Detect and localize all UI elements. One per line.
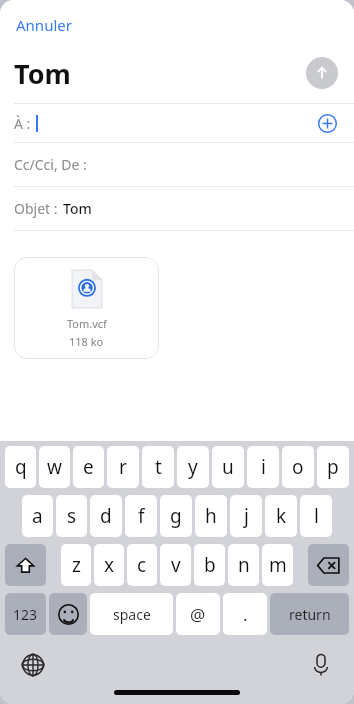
staticText: Tom xyxy=(63,199,92,218)
button[interactable]: Envoyer xyxy=(306,57,338,89)
staticText: Annuler xyxy=(16,15,72,35)
button[interactable]: l xyxy=(300,495,332,537)
button[interactable]: x xyxy=(94,544,124,586)
staticText: z xyxy=(72,552,81,578)
button[interactable]: d xyxy=(90,495,122,537)
staticText: Objet : xyxy=(14,199,58,218)
button[interactable]: i xyxy=(247,446,279,488)
button[interactable]: a xyxy=(22,495,53,537)
button[interactable]: Emoji xyxy=(49,593,87,635)
button[interactable]: z xyxy=(61,544,91,586)
staticText: Cc/Cci, De : xyxy=(14,155,87,174)
button[interactable]: k xyxy=(265,495,297,537)
button[interactable]: Cc/Cci, De : xyxy=(0,143,354,186)
button[interactable]: return xyxy=(270,593,349,635)
button[interactable]: Ajouter un contact xyxy=(314,110,340,136)
staticText: d xyxy=(100,503,112,529)
staticText: e xyxy=(83,454,94,480)
staticText: t xyxy=(155,454,162,480)
staticText: r xyxy=(119,454,127,480)
staticText: i xyxy=(261,454,266,480)
button[interactable]: p xyxy=(317,446,349,488)
staticText: h xyxy=(205,503,217,529)
staticText: w xyxy=(47,454,62,480)
staticText: s xyxy=(67,503,77,529)
button[interactable]: Supprimer xyxy=(308,544,349,586)
button[interactable]: o xyxy=(282,446,314,488)
staticText: . xyxy=(243,603,248,626)
button[interactable]: Annuler xyxy=(14,13,74,37)
button[interactable]: Objet : xyxy=(0,187,354,230)
staticText: l xyxy=(314,503,319,529)
button[interactable]: r xyxy=(107,446,139,488)
staticText: space xyxy=(113,605,151,624)
staticText: f xyxy=(138,503,145,529)
button[interactable]: b xyxy=(194,544,225,586)
staticText: j xyxy=(244,503,249,529)
staticText: v xyxy=(171,552,181,578)
button[interactable]: w xyxy=(39,446,70,488)
staticText: À : xyxy=(14,114,31,133)
staticText: 123 xyxy=(13,605,38,624)
button[interactable]: Majuscule xyxy=(5,544,46,586)
button[interactable]: space xyxy=(90,593,173,635)
staticText: c xyxy=(137,552,147,578)
button[interactable]: m xyxy=(262,544,293,586)
staticText: y xyxy=(188,454,198,480)
staticText: Tom xyxy=(14,55,71,92)
staticText: m xyxy=(269,552,287,578)
staticText: p xyxy=(327,454,339,480)
button[interactable]: c xyxy=(127,544,157,586)
staticText: q xyxy=(15,454,27,480)
staticText: x xyxy=(104,552,115,578)
button[interactable]: q xyxy=(5,446,36,488)
staticText: g xyxy=(170,503,182,529)
button[interactable]: s xyxy=(56,495,87,537)
staticText: @ xyxy=(190,603,206,626)
staticText: o xyxy=(292,454,304,480)
button[interactable]: Tom.vcf xyxy=(14,257,159,359)
button[interactable]: Changer de clavier xyxy=(16,648,50,682)
staticText: 118 ko xyxy=(69,334,104,349)
button[interactable]: Dictée xyxy=(304,648,338,682)
staticText: return xyxy=(289,605,331,624)
button[interactable]: y xyxy=(177,446,209,488)
button[interactable]: . xyxy=(223,593,267,635)
button[interactable]: g xyxy=(160,495,192,537)
staticText: Tom.vcf xyxy=(67,316,107,331)
staticText: u xyxy=(222,454,234,480)
button[interactable]: v xyxy=(160,544,191,586)
staticText: b xyxy=(204,552,216,578)
staticText: k xyxy=(276,503,287,529)
button[interactable]: À : xyxy=(0,104,354,142)
button[interactable]: t xyxy=(142,446,174,488)
button[interactable]: 123 xyxy=(5,593,46,635)
staticText: n xyxy=(238,552,250,578)
button[interactable]: u xyxy=(212,446,244,488)
staticText: a xyxy=(32,503,43,529)
button[interactable]: @ xyxy=(176,593,220,635)
button[interactable]: f xyxy=(125,495,157,537)
button[interactable]: h xyxy=(195,495,227,537)
button[interactable]: n xyxy=(228,544,259,586)
button[interactable]: j xyxy=(230,495,262,537)
button[interactable]: e xyxy=(73,446,104,488)
